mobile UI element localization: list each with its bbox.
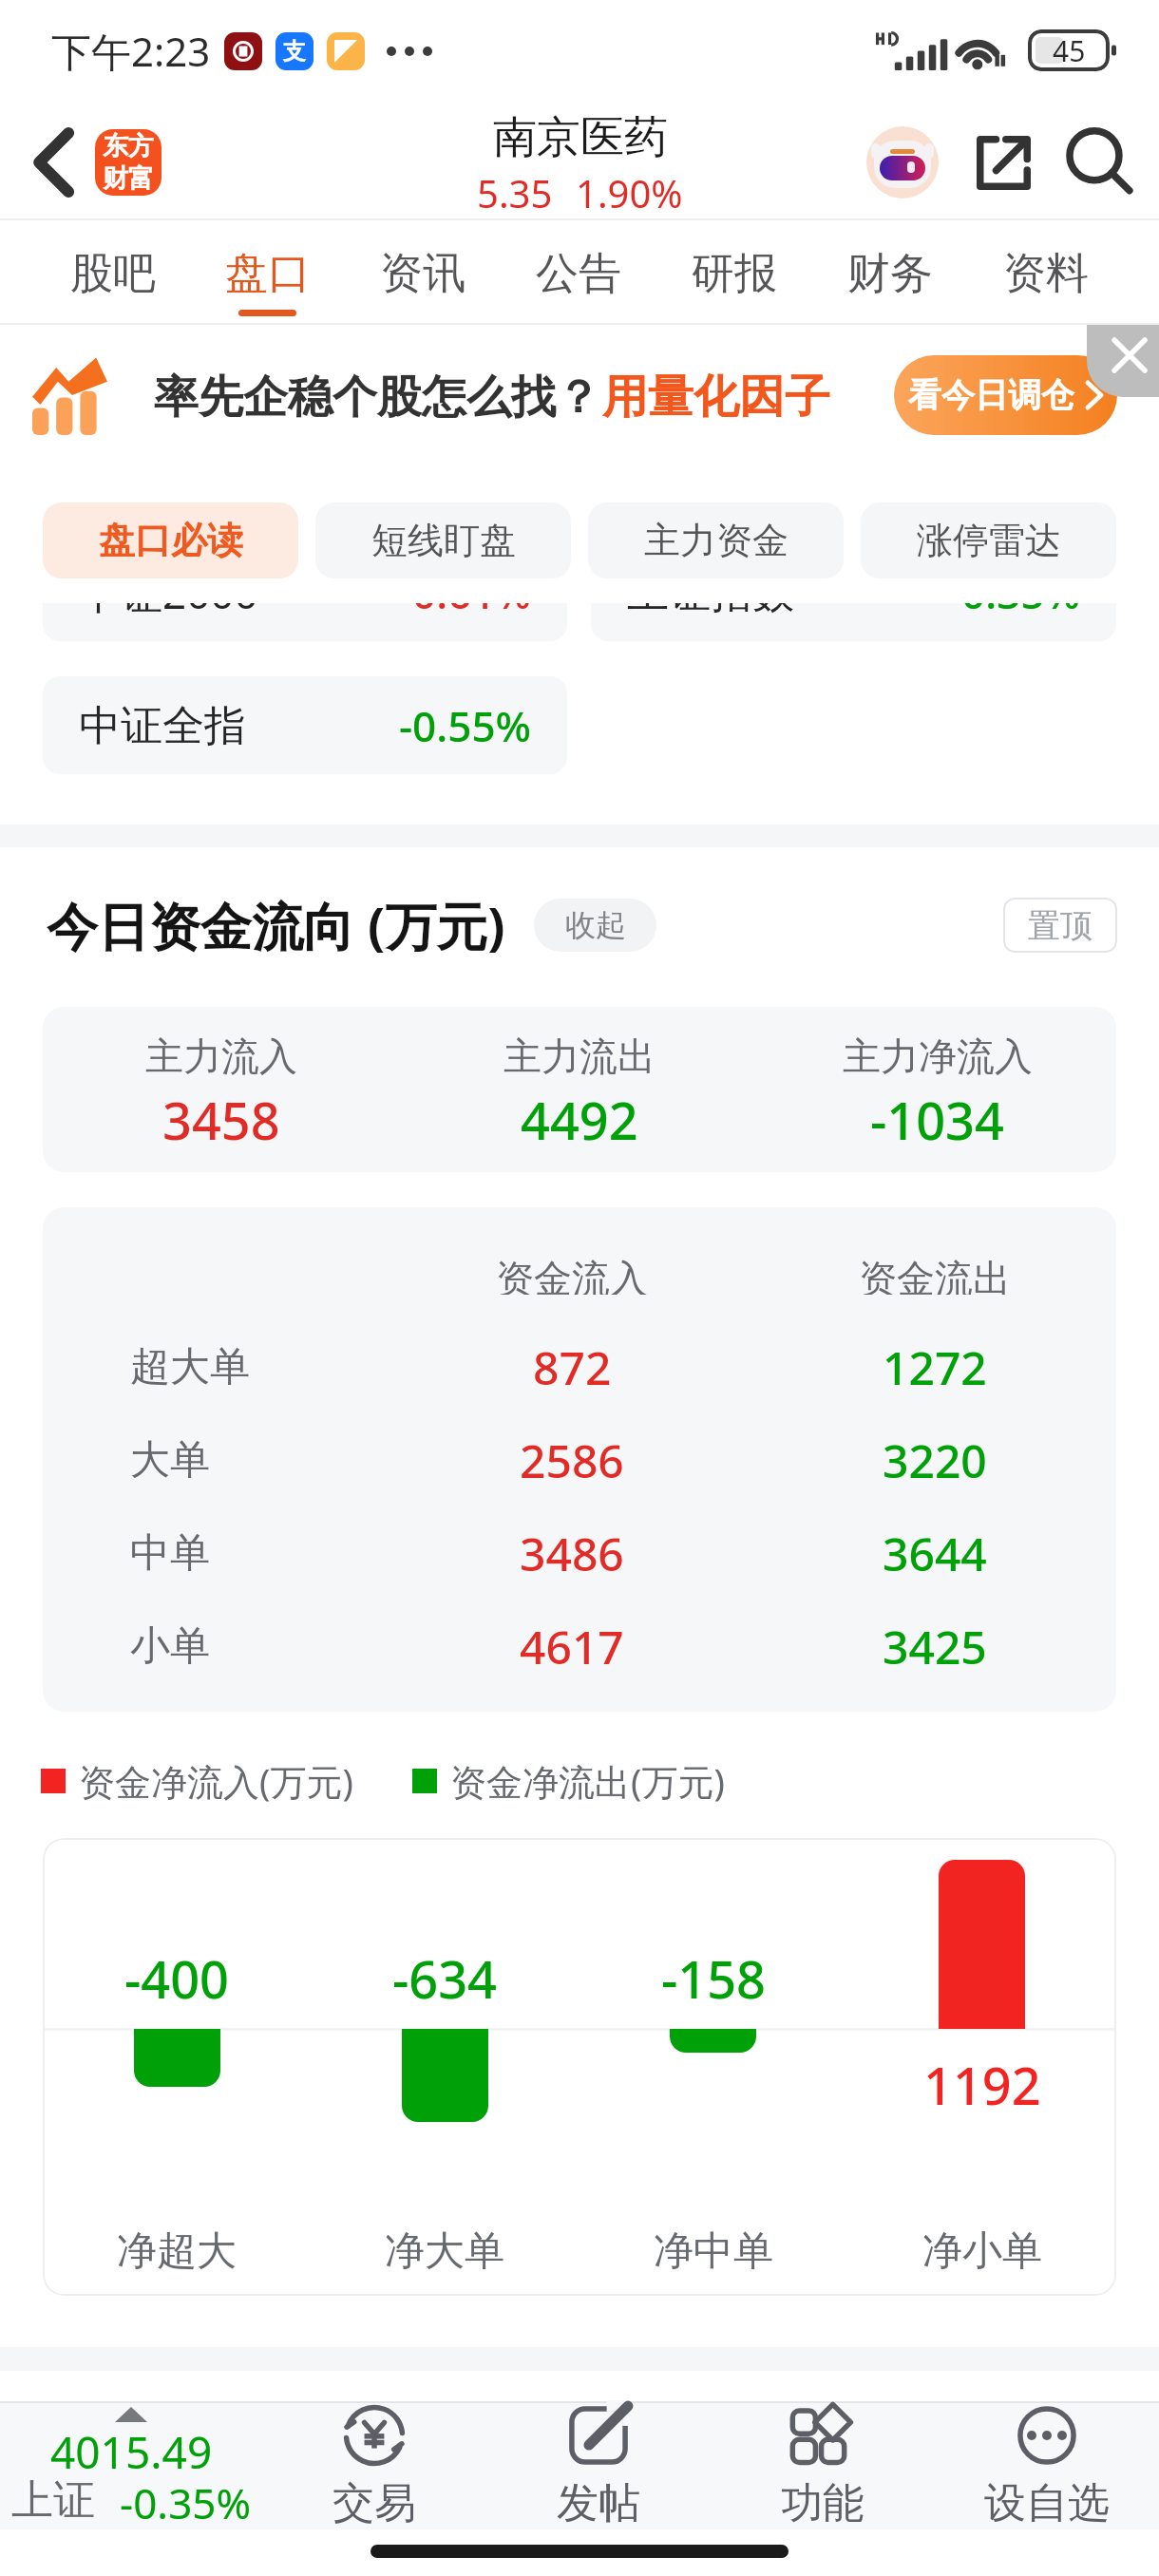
staticText: 3644	[883, 1523, 987, 1584]
staticText: 净小单	[922, 2226, 1042, 2277]
staticText: 2586	[520, 1430, 624, 1491]
staticText: 主力净流入	[843, 1032, 1033, 1080]
staticText: 设自选	[984, 2477, 1110, 2529]
button[interactable]: 上证指数	[591, 543, 1116, 641]
staticText: -0.35%	[120, 2474, 252, 2531]
staticText: -634	[392, 1943, 497, 2014]
button[interactable]: Search	[1057, 121, 1141, 204]
staticText: 资金净流入(万元)	[79, 1756, 353, 1806]
button[interactable]: 公告	[501, 220, 656, 325]
staticText: 大单	[130, 1435, 210, 1486]
button[interactable]: 功能	[711, 2401, 935, 2529]
button[interactable]: East Money home	[95, 129, 161, 196]
staticText: 1192	[923, 2050, 1041, 2120]
staticText: 交易	[332, 2477, 416, 2529]
staticText: -158	[661, 1943, 766, 2014]
staticText: 3486	[520, 1523, 624, 1584]
staticText: 今日资金流向 (万元)	[47, 890, 505, 960]
staticText: 盘口必读	[99, 518, 243, 563]
staticText: 3425	[883, 1616, 987, 1677]
button[interactable]: 主力净流入	[758, 1029, 1116, 1151]
staticText: 东方	[103, 130, 154, 162]
staticText: 短线盯盘	[371, 518, 516, 563]
button[interactable]: 中证2000	[43, 543, 567, 641]
staticText: 上证指数	[627, 567, 794, 619]
staticText: 率先企稳个股怎么找？	[154, 369, 600, 426]
staticText: 5.35	[477, 167, 553, 218]
staticText: 用量化因子	[602, 369, 830, 426]
staticText: 3458	[162, 1085, 280, 1155]
button[interactable]: 资料	[968, 220, 1124, 325]
staticText: 资料	[1003, 247, 1089, 301]
staticText: 45	[1053, 31, 1086, 70]
staticText: 资金流入	[496, 1255, 648, 1295]
staticText: 中单	[130, 1528, 210, 1579]
staticText: 净大单	[385, 2226, 504, 2277]
button[interactable]: Close banner	[1087, 325, 1159, 397]
staticText: 4015.49	[50, 2422, 213, 2482]
staticText: 1.90%	[576, 167, 683, 218]
staticText: -0.61%	[399, 564, 532, 621]
staticText: 支	[283, 37, 306, 66]
button[interactable]: 短线盯盘	[315, 502, 571, 578]
button[interactable]: 设自选	[935, 2401, 1159, 2529]
button[interactable]: AI assistant	[861, 121, 944, 204]
staticText: 发帖	[557, 2477, 640, 2529]
button[interactable]: 主力流入	[43, 1029, 400, 1151]
button[interactable]: 4015.49	[0, 2401, 262, 2529]
button[interactable]: 资讯	[345, 220, 501, 325]
staticText: 资讯	[380, 247, 465, 301]
staticText: 净中单	[654, 2226, 773, 2277]
staticText: 置顶	[1028, 905, 1092, 946]
staticText: -400	[124, 1943, 229, 2014]
staticText: 872	[533, 1336, 612, 1398]
staticText: 公告	[536, 247, 621, 301]
staticText: 看今日调仓	[908, 374, 1074, 416]
button[interactable]: 盘口	[190, 220, 345, 325]
button[interactable]: 涨停雷达	[861, 502, 1116, 578]
staticText: 3220	[883, 1430, 987, 1491]
button[interactable]: 收起	[534, 899, 656, 952]
button[interactable]: 盘口必读	[43, 502, 298, 578]
staticText: 涨停雷达	[917, 518, 1061, 563]
button[interactable]: 看今日调仓	[894, 355, 1117, 435]
button[interactable]: 率先企稳个股怎么找？	[32, 325, 1159, 465]
staticText: -0.35%	[948, 564, 1081, 621]
button[interactable]: 财务	[812, 220, 968, 325]
staticText: 主力资金	[644, 518, 788, 563]
staticText: 股吧	[70, 247, 156, 301]
staticText: 研报	[692, 247, 777, 301]
staticText: 净超大	[117, 2226, 237, 2277]
button[interactable]: 研报	[656, 220, 812, 325]
staticText: 下午2:23	[51, 24, 211, 78]
staticText: 4617	[520, 1616, 624, 1677]
staticText: 1272	[883, 1336, 987, 1398]
staticText: 财务	[847, 247, 933, 301]
staticText: 主力流入	[145, 1032, 297, 1080]
staticText: 南京医药	[493, 110, 668, 165]
button[interactable]: Back	[13, 122, 95, 203]
staticText: -1034	[870, 1085, 1004, 1155]
staticText: 4492	[521, 1085, 638, 1155]
staticText: 资金流出	[859, 1255, 1011, 1295]
staticText: 功能	[781, 2477, 864, 2529]
button[interactable]: 股吧	[35, 220, 190, 325]
staticText: 盘口	[225, 247, 311, 301]
staticText: 中证2000	[79, 564, 258, 621]
button[interactable]: 发帖	[486, 2401, 711, 2529]
button[interactable]: 中证全指	[43, 676, 567, 774]
staticText: 收起	[565, 906, 626, 944]
staticText: 财富	[103, 162, 154, 195]
staticText: 超大单	[130, 1342, 250, 1392]
staticText: 小单	[130, 1621, 210, 1672]
staticText: -0.55%	[399, 697, 532, 754]
staticText: 主力流出	[503, 1032, 655, 1080]
staticText: 资金净流出(万元)	[450, 1756, 725, 1806]
button[interactable]: 主力资金	[588, 502, 844, 578]
staticText: 中证全指	[79, 700, 246, 752]
button[interactable]: 交易	[262, 2401, 486, 2529]
staticText: 上证	[11, 2474, 95, 2527]
button[interactable]: 置顶	[1003, 898, 1117, 953]
button[interactable]: Share	[961, 121, 1045, 204]
button[interactable]: 主力流出	[400, 1029, 758, 1151]
